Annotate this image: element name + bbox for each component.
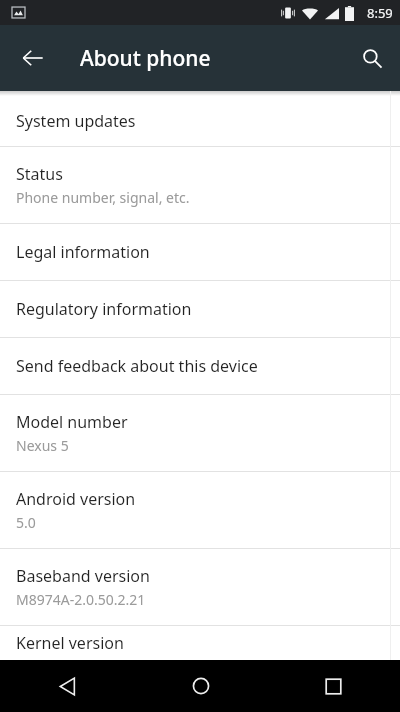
staticText: Android version xyxy=(16,488,136,510)
staticText: Model number xyxy=(16,411,128,433)
button[interactable]: Regulatory information xyxy=(0,281,400,337)
button[interactable]: Legal information xyxy=(0,224,400,280)
button[interactable]: Search xyxy=(348,34,396,82)
staticText: Baseband version xyxy=(16,565,150,587)
staticText: Kernel version xyxy=(16,632,124,654)
staticText: 8:59 xyxy=(367,4,393,22)
staticText: Status xyxy=(16,163,63,185)
staticText: 5.0 xyxy=(16,513,36,532)
button[interactable]: Baseband version xyxy=(0,549,400,625)
button[interactable]: Recent apps xyxy=(267,660,400,712)
staticText: Legal information xyxy=(16,241,150,263)
button[interactable]: Kernel version xyxy=(0,626,400,660)
staticText: Phone number, signal, etc. xyxy=(16,188,190,207)
staticText: Send feedback about this device xyxy=(16,355,258,377)
button[interactable]: Back xyxy=(0,660,134,712)
button[interactable]: System updates xyxy=(0,96,400,146)
staticText: System updates xyxy=(16,110,136,132)
button[interactable]: Android version xyxy=(0,472,400,548)
button[interactable]: Send feedback about this device xyxy=(0,338,400,394)
staticText: Regulatory information xyxy=(16,298,192,320)
button[interactable]: Home xyxy=(134,660,267,712)
staticText: Nexus 5 xyxy=(16,436,69,455)
staticText: M8974A-2.0.50.2.21 xyxy=(16,590,146,609)
button[interactable]: Navigate up xyxy=(9,34,57,82)
button[interactable]: Status xyxy=(0,147,400,223)
staticText: About phone xyxy=(80,44,211,73)
button[interactable]: Model number xyxy=(0,395,400,471)
